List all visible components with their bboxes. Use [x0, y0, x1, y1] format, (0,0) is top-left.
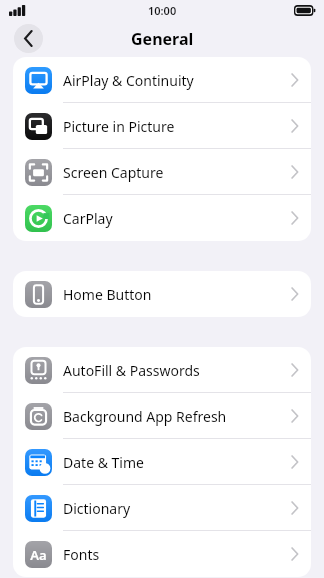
- button[interactable]: Dictionary: [13, 485, 311, 531]
- button[interactable]: AirPlay & Continuity: [13, 57, 311, 103]
- button[interactable]: Date & Time: [13, 439, 311, 485]
- button[interactable]: Back: [14, 24, 43, 53]
- staticText: AutoFill & Passwords: [63, 361, 291, 380]
- staticText: Background App Refresh: [63, 407, 291, 426]
- button[interactable]: Home Button: [13, 271, 311, 317]
- staticText: Date & Time: [63, 453, 291, 472]
- button[interactable]: Aa: [13, 531, 311, 577]
- staticText: Picture in Picture: [63, 117, 291, 136]
- button[interactable]: CarPlay: [13, 195, 311, 241]
- staticText: Dictionary: [63, 499, 291, 518]
- staticText: 10:00: [148, 3, 177, 18]
- staticText: Fonts: [63, 545, 291, 564]
- staticText: AirPlay & Continuity: [63, 71, 291, 90]
- button[interactable]: Screen Capture: [13, 149, 311, 195]
- staticText: Home Button: [63, 285, 291, 304]
- staticText: CarPlay: [63, 209, 291, 228]
- button[interactable]: Picture in Picture: [13, 103, 311, 149]
- button[interactable]: Background App Refresh: [13, 393, 311, 439]
- staticText: General: [131, 28, 194, 50]
- staticText: Screen Capture: [63, 163, 291, 182]
- staticText: Aa: [30, 546, 47, 564]
- button[interactable]: AutoFill & Passwords: [13, 347, 311, 393]
